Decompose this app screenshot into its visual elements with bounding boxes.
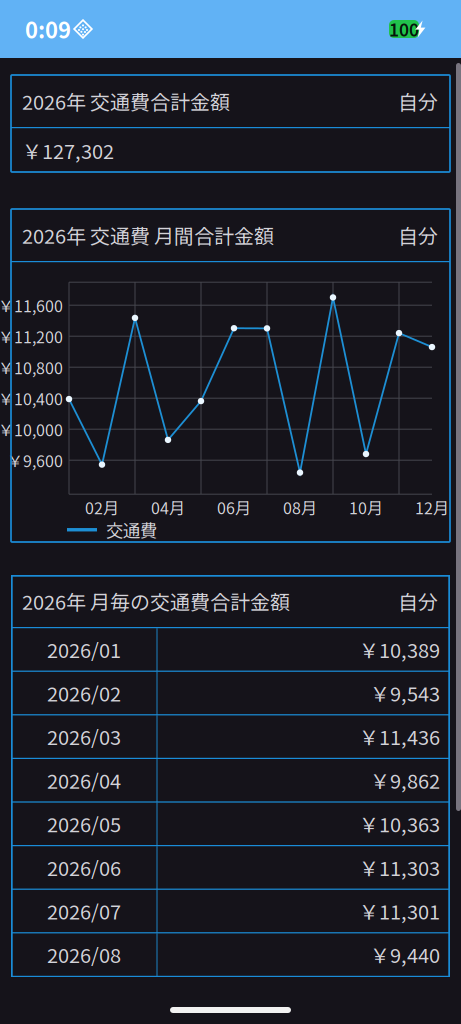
- staticText: 交通費: [106, 517, 157, 542]
- staticText: ￥9,543: [370, 678, 440, 707]
- staticText: ￥11,600: [0, 294, 63, 317]
- staticText: 2026/07: [47, 896, 121, 925]
- staticText: 10月: [349, 496, 383, 519]
- button[interactable]: 2026/05: [11, 803, 450, 846]
- staticText: ￥10,400: [0, 387, 63, 410]
- staticText: 2026年 交通費合計金額: [22, 86, 230, 115]
- staticText: 2026/04: [47, 765, 121, 794]
- staticText: 04月: [151, 496, 185, 519]
- staticText: ￥10,800: [0, 356, 63, 379]
- staticText: ￥11,301: [359, 896, 440, 925]
- staticText: 12月: [415, 496, 449, 519]
- staticText: 2026/01: [47, 635, 121, 664]
- button[interactable]: 2026/07: [11, 890, 450, 933]
- staticText: 100: [389, 16, 419, 42]
- button[interactable]: 2026/03: [11, 715, 450, 759]
- staticText: 自分: [398, 586, 438, 615]
- button[interactable]: 2026/08: [11, 933, 450, 977]
- staticText: 2026/08: [47, 940, 121, 969]
- staticText: 2026/05: [47, 809, 121, 838]
- button[interactable]: 2026年 交通費合計金額: [11, 75, 450, 127]
- staticText: ￥9,600: [7, 449, 63, 472]
- staticText: 2026年 月毎の交通費合計金額: [22, 586, 290, 615]
- button[interactable]: 2026/02: [11, 672, 450, 715]
- staticText: 2026年 交通費 月間合計金額: [22, 220, 274, 249]
- staticText: ￥10,363: [359, 809, 440, 838]
- button[interactable]: 2026/01: [11, 628, 450, 672]
- staticText: ￥10,000: [0, 418, 63, 441]
- staticText: 自分: [398, 86, 438, 115]
- staticText: ￥11,303: [359, 853, 440, 882]
- button[interactable]: 2026/04: [11, 759, 450, 803]
- staticText: 08月: [283, 496, 317, 519]
- staticText: ￥11,436: [359, 722, 440, 751]
- staticText: 06月: [217, 496, 251, 519]
- button[interactable]: 2026/06: [11, 846, 450, 890]
- staticText: 02月: [85, 496, 119, 519]
- staticText: ￥9,440: [370, 940, 440, 969]
- button[interactable]: 2026年 交通費 月間合計金額: [11, 209, 450, 261]
- staticText: 自分: [398, 220, 438, 249]
- staticText: ￥9,862: [370, 765, 440, 794]
- staticText: 2026/03: [47, 722, 121, 751]
- staticText: 2026/02: [47, 678, 121, 707]
- staticText: ￥10,389: [359, 635, 440, 664]
- staticText: ￥127,302: [22, 136, 114, 165]
- button[interactable]: 2026年 月毎の交通費合計金額: [11, 575, 450, 627]
- staticText: 0:09: [25, 13, 71, 45]
- staticText: 2026/06: [47, 853, 121, 882]
- staticText: ￥11,200: [0, 325, 63, 348]
